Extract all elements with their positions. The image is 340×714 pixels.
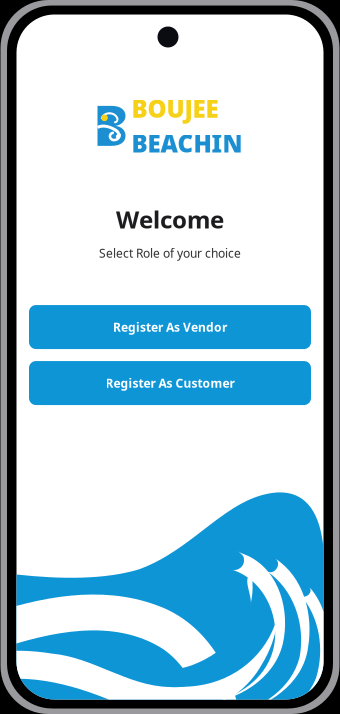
staticText: BEACHIN [131,127,242,159]
button[interactable]: Register As Vendor [29,305,311,349]
staticText: Register As Customer [105,375,234,391]
staticText: BOUJEE [131,92,218,124]
button[interactable]: Register As Customer [29,361,311,405]
staticText: Register As Vendor [113,319,227,335]
staticText: Welcome [116,203,224,235]
staticText: Select Role of your choice [99,245,241,261]
